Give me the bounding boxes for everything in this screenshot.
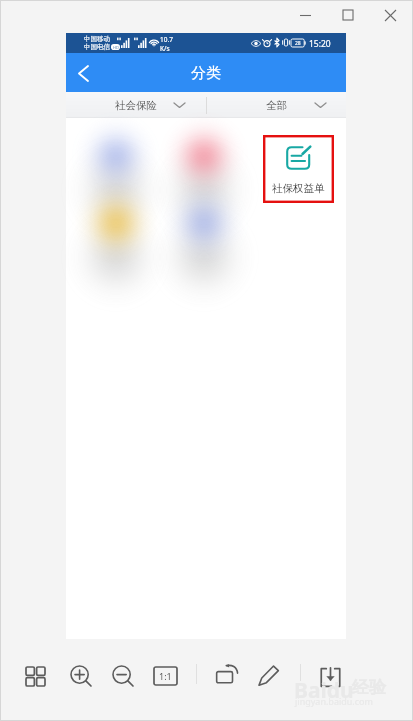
staticText: 1:1 xyxy=(159,670,172,682)
button[interactable]: 全部 xyxy=(206,92,346,118)
button[interactable]: Zoom in xyxy=(66,662,96,692)
button[interactable]: 社保权益单 xyxy=(263,135,334,203)
button[interactable]: Rotate xyxy=(212,659,242,689)
staticText: Baidu xyxy=(294,676,354,705)
staticText: 社保权益单 xyxy=(272,182,325,195)
staticText: 中国移动 xyxy=(84,35,110,43)
button[interactable]: Zoom out xyxy=(108,662,138,692)
staticText: 经验 xyxy=(352,677,386,698)
staticText: 分类 xyxy=(191,64,221,83)
staticText: 10.7 xyxy=(160,35,173,44)
staticText: 社会保险 xyxy=(115,99,157,112)
staticText: K/s xyxy=(160,44,170,53)
button[interactable]: Close xyxy=(372,1,408,29)
staticText: 中国电信 xyxy=(84,43,110,51)
button[interactable]: Minimize xyxy=(287,1,323,29)
staticText: 15:20 xyxy=(309,38,331,50)
button[interactable]: Save xyxy=(315,662,345,692)
button[interactable]: Edit xyxy=(253,660,283,690)
staticText: 28 xyxy=(295,40,301,47)
button[interactable]: Actual size xyxy=(150,661,180,691)
staticText: jingyan.baidu.com xyxy=(295,695,373,707)
button[interactable]: Thumbnails xyxy=(20,661,50,691)
staticText: HD xyxy=(113,45,119,50)
staticText: 全部 xyxy=(266,99,287,112)
button[interactable]: Back xyxy=(68,58,98,88)
button[interactable]: 社会保险 xyxy=(66,92,206,118)
button[interactable]: Maximize xyxy=(330,1,366,29)
